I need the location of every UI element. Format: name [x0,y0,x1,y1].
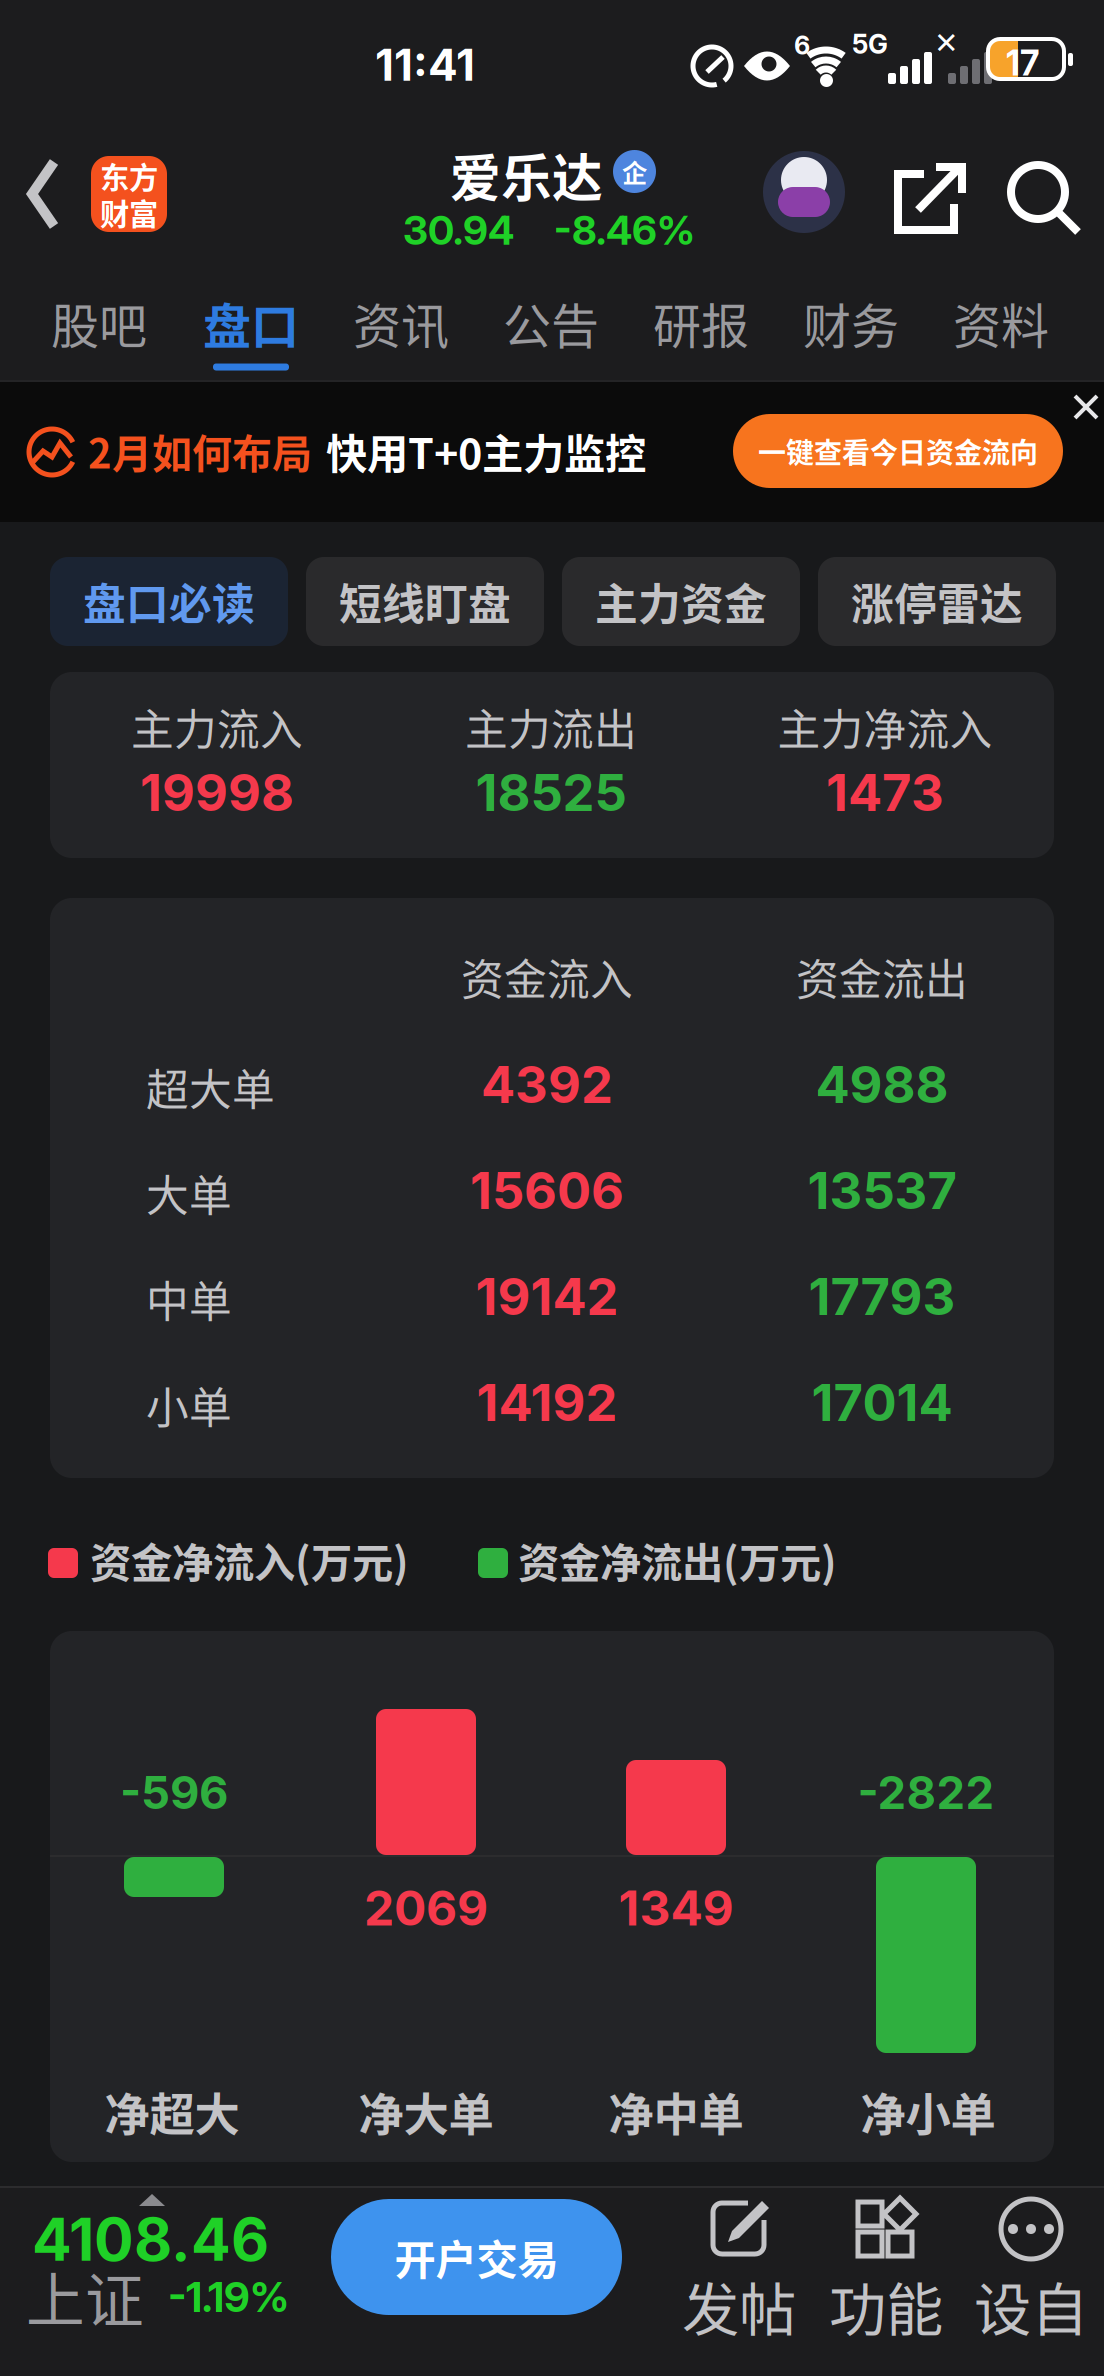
button[interactable]: 一键查看今日资金流向 [733,414,1063,488]
staticText: 开户交易 [394,2227,558,2287]
button[interactable]: 盘口 [199,268,303,380]
staticText: 小单 [146,1374,232,1436]
staticText: 公告 [503,288,599,357]
staticText: 盘口 [203,288,299,357]
button[interactable]: 功能 [827,2198,945,2376]
staticText: 功能 [829,2264,943,2347]
staticText: 资讯 [353,288,449,357]
staticText: 17793 [808,1266,955,1327]
staticText: 主力资金 [595,571,767,632]
staticText: -2822 [857,1765,994,1820]
staticText: 2069 [364,1879,488,1937]
staticText: 6 [794,30,810,61]
staticText: 设自 [974,2264,1088,2347]
button[interactable]: 资讯 [349,268,453,380]
staticText: ✕ [934,26,959,60]
staticText: -8.46% [554,206,695,254]
button[interactable]: 短线盯盘 [306,557,544,646]
staticText: 主力净流入 [777,696,992,758]
staticText: 快用T+0主力监控 [326,421,646,481]
staticText: 30.94 [403,206,514,254]
staticText: 净超大 [104,2079,239,2145]
staticText: 研报 [653,288,749,357]
button[interactable]: Back [14,148,72,240]
staticText: 超大单 [146,1056,275,1118]
staticText: 1473 [826,762,944,823]
staticText: 主力流出 [465,696,637,758]
staticText: 净小单 [860,2079,995,2145]
staticText: 东方 [100,154,158,197]
button[interactable]: Search [1000,152,1092,248]
staticText: 财务 [803,288,899,357]
staticText: 涨停雷达 [851,571,1023,632]
staticText: 资金流入 [461,946,633,1008]
staticText: -1.19% [168,2272,289,2322]
button[interactable]: 设自 [972,2198,1090,2376]
staticText: 11:41 [375,38,475,91]
staticText: 资料 [953,288,1049,357]
staticText: 14192 [476,1372,617,1433]
staticText: 资金流出 [796,946,968,1008]
staticText: 4392 [481,1054,613,1115]
button[interactable]: 东方 [91,156,167,232]
staticText: 15606 [470,1160,624,1221]
staticText: 4988 [815,1054,948,1115]
button[interactable]: 财务 [799,268,903,380]
staticText: 19142 [475,1266,618,1327]
staticText: 主力流入 [131,696,303,758]
staticText: 17 [1006,42,1039,84]
staticText: 短线盯盘 [339,571,511,632]
staticText: 股吧 [51,288,147,357]
staticText: 18525 [475,762,626,823]
button[interactable]: 发帖 [680,2198,798,2376]
staticText: 资金净流入(万元) [90,1530,409,1590]
staticText: 2月如何布局 [88,422,312,480]
staticText: 13537 [807,1160,956,1221]
staticText: 5G [852,28,888,60]
button[interactable]: Close [1061,382,1104,432]
staticText: 净大单 [358,2079,493,2145]
staticText: 财富 [100,191,158,233]
button[interactable]: Avatar [763,151,845,233]
staticText: 发帖 [682,2264,796,2347]
staticText: 1349 [618,1879,733,1937]
staticText: 资金净流出(万元) [518,1530,837,1590]
button[interactable]: 盘口必读 [50,557,288,646]
button[interactable]: 公告 [499,268,603,380]
button[interactable]: 研报 [649,268,753,380]
staticText: 一键查看今日资金流向 [758,431,1038,471]
button[interactable]: 开户交易 [331,2199,622,2315]
staticText: 中单 [146,1268,232,1330]
button[interactable]: 股吧 [47,268,151,380]
button[interactable]: Share [884,152,976,248]
staticText: 大单 [146,1162,232,1224]
staticText: 19998 [140,762,294,823]
staticText: 爱乐达 [450,138,603,211]
staticText: 盘口必读 [83,571,255,632]
staticText: 上证 [26,2254,144,2339]
staticText: -596 [120,1765,228,1820]
staticText: 企 [622,153,647,190]
staticText: 17014 [811,1372,952,1433]
button[interactable]: 涨停雷达 [818,557,1056,646]
staticText: 4108.46 [32,2204,269,2275]
button[interactable]: 资料 [949,268,1053,380]
button[interactable]: 主力资金 [562,557,800,646]
staticText: 净中单 [608,2079,743,2145]
